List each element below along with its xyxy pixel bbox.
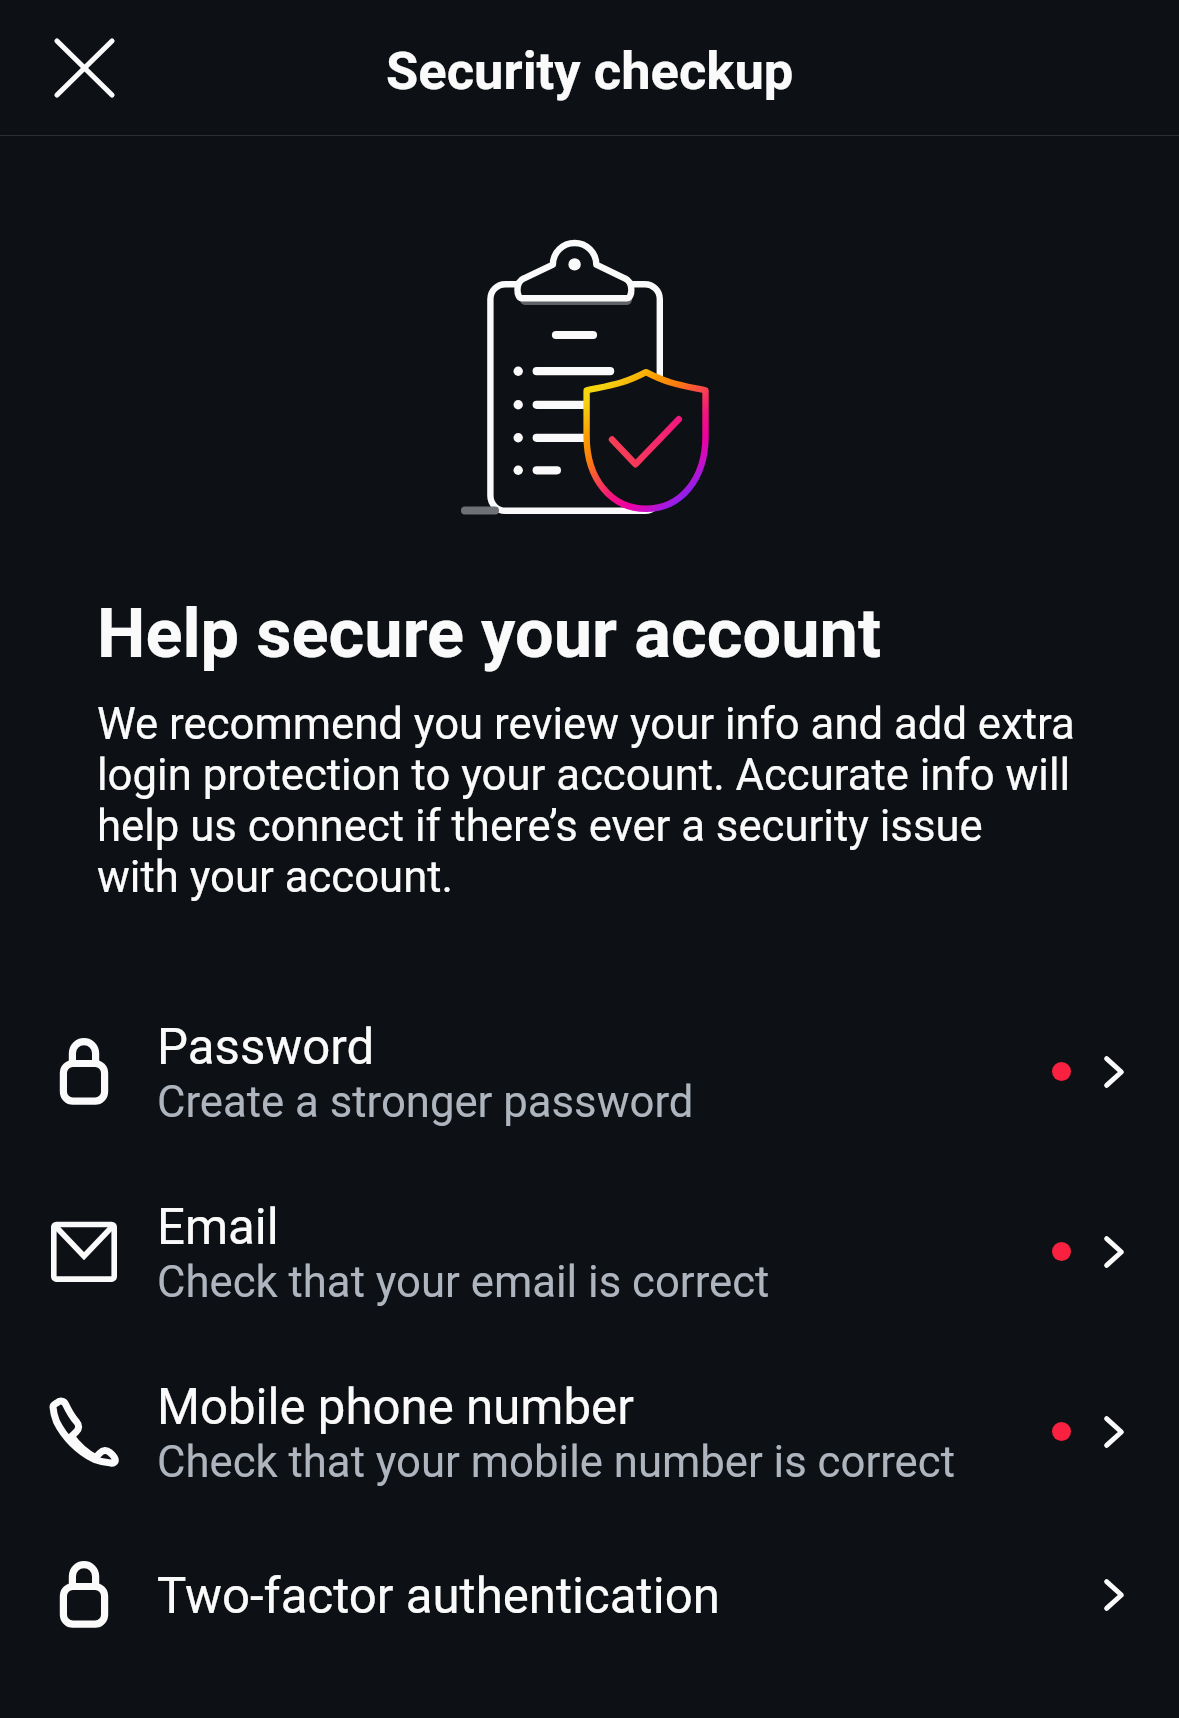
staticText: Email bbox=[157, 1200, 279, 1256]
button[interactable]: Mobile phone number bbox=[0, 1359, 1179, 1509]
button[interactable]: Two-factor authentication bbox=[0, 1522, 1179, 1672]
staticText: Mobile phone number bbox=[157, 1380, 634, 1436]
staticText: Help secure your account bbox=[97, 598, 882, 672]
staticText: Create a stronger password bbox=[157, 1076, 694, 1128]
staticText: We recommend you review your info and ad… bbox=[97, 699, 1075, 903]
staticText: Check that your email is correct bbox=[157, 1256, 770, 1308]
staticText: Two-factor authentication bbox=[157, 1569, 720, 1625]
staticText: Security checkup bbox=[386, 40, 794, 102]
button[interactable]: Close bbox=[29, 13, 139, 123]
button[interactable]: Email bbox=[0, 1179, 1179, 1329]
staticText: Password bbox=[157, 1020, 375, 1076]
staticText: Check that your mobile number is correct bbox=[157, 1436, 955, 1488]
button[interactable]: Password bbox=[0, 999, 1179, 1149]
